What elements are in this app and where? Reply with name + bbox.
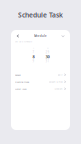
staticText: Vacuum & mop: [48, 80, 62, 83]
staticText: Daily: [57, 73, 62, 76]
button[interactable]: Repeat: [11, 71, 70, 78]
button[interactable]: Cleaning mode: [11, 78, 70, 85]
staticText: 7: [32, 50, 34, 54]
staticText: Water level: [15, 87, 27, 90]
staticText: Schedule Task: [18, 10, 63, 20]
staticText: 6: [33, 46, 34, 49]
button[interactable]: Water level: [11, 85, 70, 92]
staticText: 28: [46, 46, 48, 49]
staticText: Schedule: [34, 34, 47, 38]
staticText: Repeat: [15, 73, 21, 76]
staticText: Medium: [54, 87, 62, 90]
staticText: 29: [45, 50, 49, 54]
staticText: 8: [32, 54, 34, 59]
staticText: Cleaning mode: [15, 80, 29, 83]
staticText: 9: [32, 59, 34, 63]
button[interactable]: Options: [60, 33, 66, 39]
staticText: 30: [45, 54, 49, 59]
button[interactable]: Back: [15, 33, 21, 39]
staticText: 31: [45, 59, 49, 63]
staticText: Set up a schedule: [15, 40, 32, 43]
